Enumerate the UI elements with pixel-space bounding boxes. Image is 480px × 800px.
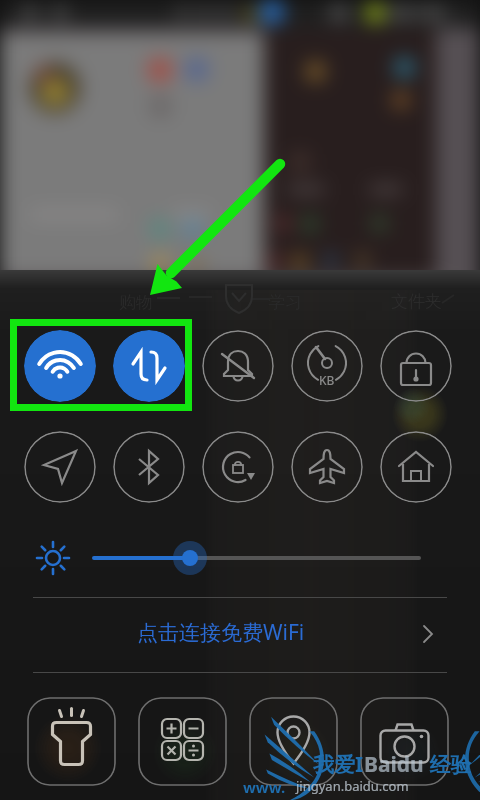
staticText: jingyan.baidu.com bbox=[296, 777, 409, 795]
staticText: www. bbox=[243, 777, 286, 797]
staticText: KB bbox=[319, 372, 335, 388]
button[interactable]: Maps bbox=[249, 697, 338, 786]
button[interactable]: 点击连接免费WiFi bbox=[0, 598, 480, 672]
button[interactable]: WLAN bbox=[24, 330, 96, 402]
button[interactable]: Airplane mode bbox=[291, 431, 363, 503]
staticText: 我爱I bbox=[313, 750, 364, 779]
staticText: 文件夹 bbox=[391, 291, 442, 312]
button[interactable]: Bluetooth bbox=[113, 431, 185, 503]
button[interactable]: Silent mode bbox=[202, 330, 274, 402]
staticText: Baidu bbox=[364, 750, 424, 779]
button[interactable]: Mobile data bbox=[113, 330, 185, 402]
button[interactable]: Flashlight bbox=[27, 697, 116, 786]
staticText: 购物 bbox=[119, 292, 153, 313]
staticText: 点击连接免费WiFi bbox=[137, 618, 305, 647]
button[interactable]: Screen lock bbox=[380, 330, 452, 402]
button[interactable]: Network speed bbox=[291, 330, 363, 402]
button[interactable]: Location bbox=[24, 431, 96, 503]
button[interactable]: Home bbox=[380, 431, 452, 503]
button[interactable]: Camera bbox=[360, 697, 449, 786]
button[interactable]: Auto rotate bbox=[202, 431, 274, 503]
button[interactable]: Calculator bbox=[138, 697, 227, 786]
staticText: 经验 bbox=[424, 750, 472, 779]
